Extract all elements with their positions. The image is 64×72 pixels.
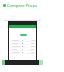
button[interactable] [9, 39, 36, 42]
button[interactable] [9, 48, 36, 51]
button[interactable] [9, 42, 36, 45]
button[interactable] [9, 45, 36, 48]
staticText: Compare Prices [7, 3, 37, 8]
button[interactable] [20, 34, 27, 36]
button[interactable]: Compare Prices [3, 2, 37, 8]
button[interactable] [9, 51, 36, 54]
